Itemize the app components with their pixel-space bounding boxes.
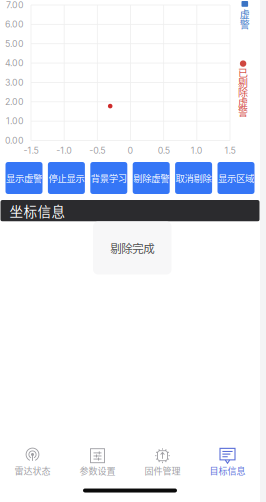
button[interactable]: 显示虚警 bbox=[5, 162, 42, 194]
staticText: 显示区域 bbox=[218, 171, 254, 185]
staticText: 3.00 bbox=[5, 77, 24, 88]
staticText: 6.00 bbox=[5, 19, 24, 30]
button[interactable]: 停止显示 bbox=[48, 162, 85, 194]
staticText: 虚 bbox=[238, 95, 248, 109]
staticText: -1.0 bbox=[56, 145, 72, 156]
staticText: 显示虚警 bbox=[6, 171, 42, 185]
staticText: 5.00 bbox=[5, 38, 24, 49]
staticText: 2.00 bbox=[5, 96, 24, 107]
staticText: 0 bbox=[127, 145, 133, 156]
staticText: 已 bbox=[238, 65, 248, 80]
staticText: 1.5 bbox=[224, 145, 235, 156]
staticText: 0.00 bbox=[5, 135, 24, 146]
staticText: 7.00 bbox=[6, 0, 24, 10]
staticText: 目标信息 bbox=[209, 464, 245, 477]
staticText: 取消剔除 bbox=[176, 171, 212, 185]
staticText: 警 bbox=[238, 104, 248, 119]
staticText: 0.5 bbox=[158, 145, 170, 156]
button[interactable]: 雷达状态 bbox=[0, 426, 65, 477]
button[interactable]: 固件管理 bbox=[130, 426, 195, 477]
button[interactable]: 参数设置 bbox=[65, 426, 130, 477]
staticText: 剔除虚警 bbox=[133, 171, 169, 185]
staticText: 坐标信息 bbox=[9, 201, 65, 221]
staticText: -0.5 bbox=[89, 145, 105, 156]
staticText: 虚 bbox=[240, 7, 250, 21]
staticText: 除 bbox=[238, 85, 248, 99]
staticText: 4.00 bbox=[5, 58, 24, 68]
staticText: -1.5 bbox=[23, 145, 38, 156]
button[interactable]: 取消剔除 bbox=[175, 162, 212, 194]
button[interactable]: 显示区域 bbox=[217, 162, 254, 194]
staticText: 停止显示 bbox=[48, 171, 84, 185]
staticText: 雷达状态 bbox=[14, 464, 50, 477]
button[interactable]: 背景学习 bbox=[90, 162, 127, 194]
button[interactable]: 目标信息 bbox=[195, 426, 260, 477]
staticText: 参数设置 bbox=[79, 464, 115, 477]
staticText: 1.00 bbox=[6, 116, 24, 126]
staticText: 剔 bbox=[238, 75, 248, 90]
staticText: 固件管理 bbox=[144, 464, 180, 477]
staticText: 背景学习 bbox=[91, 171, 127, 185]
button[interactable]: 剔除虚警 bbox=[133, 162, 170, 194]
staticText: 剔除完成 bbox=[110, 240, 154, 256]
staticText: 警 bbox=[240, 17, 250, 31]
staticText: 1.0 bbox=[191, 145, 203, 156]
